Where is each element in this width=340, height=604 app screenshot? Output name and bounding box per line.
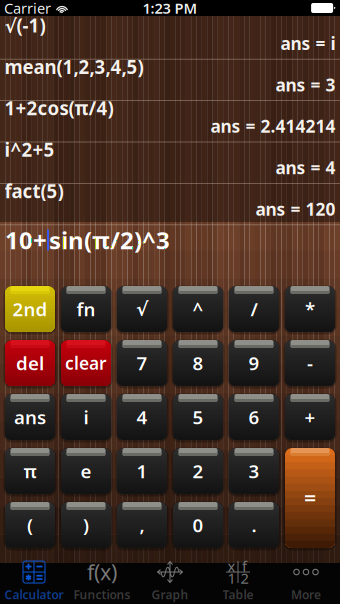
button[interactable]: 5 bbox=[173, 394, 223, 440]
button[interactable]: + bbox=[285, 394, 335, 440]
staticText: * bbox=[305, 297, 315, 321]
button[interactable]: i bbox=[61, 394, 111, 440]
staticText: 2nd bbox=[12, 297, 47, 321]
staticText: 1 bbox=[136, 459, 147, 483]
staticText: 8 bbox=[192, 351, 203, 375]
button[interactable]: e bbox=[61, 448, 111, 494]
button[interactable]: * bbox=[285, 286, 335, 332]
staticText: Calculator bbox=[4, 586, 63, 602]
staticText: 10+ bbox=[5, 224, 47, 256]
staticText: ) bbox=[83, 513, 89, 537]
staticText: Carrier bbox=[4, 0, 51, 18]
button[interactable]: 3 bbox=[229, 448, 279, 494]
staticText: i^2+5 bbox=[4, 137, 54, 162]
button[interactable]: f(x) bbox=[68, 563, 136, 604]
staticText: i bbox=[83, 405, 88, 429]
staticText: e bbox=[80, 459, 91, 483]
staticText: f(x) bbox=[87, 558, 117, 586]
staticText: ans = 120 bbox=[255, 197, 335, 220]
staticText: 1:23 PM bbox=[142, 0, 197, 18]
staticText: 1 bbox=[227, 568, 235, 588]
button[interactable]: 2 bbox=[173, 448, 223, 494]
button[interactable]: 9 bbox=[229, 340, 279, 386]
button[interactable]: = bbox=[285, 448, 335, 548]
staticText: √ bbox=[136, 298, 148, 320]
button[interactable]: x bbox=[204, 563, 272, 604]
staticText: 1+2cos(π/4) bbox=[4, 96, 113, 120]
staticText: = bbox=[304, 484, 316, 512]
staticText: mean(1,2,3,4,5) bbox=[4, 54, 143, 79]
button[interactable]: 6 bbox=[229, 394, 279, 440]
button[interactable]: Graph bbox=[136, 563, 204, 604]
staticText: fact(5) bbox=[4, 178, 63, 203]
button[interactable]: 10+ bbox=[0, 227, 340, 253]
staticText: - bbox=[307, 351, 313, 375]
button[interactable]: fn bbox=[61, 286, 111, 332]
button[interactable]: ( bbox=[5, 502, 55, 548]
staticText: 5 bbox=[192, 405, 203, 429]
staticText: + bbox=[304, 405, 315, 429]
staticText: x bbox=[227, 556, 235, 576]
staticText: 3 bbox=[248, 459, 259, 483]
button[interactable]: 8 bbox=[173, 340, 223, 386]
button[interactable]: clear bbox=[61, 340, 111, 386]
staticText: √(-1) bbox=[4, 13, 45, 38]
staticText: π bbox=[23, 459, 36, 483]
button[interactable]: ans bbox=[5, 394, 55, 440]
staticText: 0 bbox=[192, 513, 203, 537]
staticText: , bbox=[139, 513, 144, 537]
staticText: del bbox=[16, 351, 44, 375]
staticText: More bbox=[291, 586, 321, 602]
button[interactable]: del bbox=[5, 340, 55, 386]
staticText: ans = 2.414214 bbox=[210, 115, 335, 138]
staticText: Graph bbox=[151, 586, 188, 602]
button[interactable]: 4 bbox=[117, 394, 167, 440]
button[interactable]: 2nd bbox=[5, 286, 55, 332]
staticText: . bbox=[251, 513, 256, 537]
button[interactable]: √(-1) bbox=[0, 16, 340, 57]
button[interactable]: √ bbox=[117, 286, 167, 332]
staticText: ans = 4 bbox=[275, 156, 335, 179]
button[interactable]: 1 bbox=[117, 448, 167, 494]
button[interactable]: More bbox=[272, 563, 340, 604]
staticText: 2 bbox=[240, 568, 248, 588]
button[interactable]: 1+2cos(π/4) bbox=[0, 99, 340, 140]
button[interactable]: 0 bbox=[173, 502, 223, 548]
button[interactable]: fact(5) bbox=[0, 182, 340, 223]
staticText: 2 bbox=[192, 459, 203, 483]
button[interactable]: . bbox=[229, 502, 279, 548]
staticText: 7 bbox=[136, 351, 147, 375]
staticText: ans = 3 bbox=[275, 73, 335, 96]
button[interactable]: , bbox=[117, 502, 167, 548]
staticText: Functions bbox=[73, 586, 130, 602]
staticText: 4 bbox=[136, 405, 147, 429]
staticText: sin(π/2)^3 bbox=[49, 224, 170, 256]
staticText: / bbox=[250, 297, 257, 321]
button[interactable]: / bbox=[229, 286, 279, 332]
staticText: 9 bbox=[248, 351, 259, 375]
staticText: ^ bbox=[192, 297, 203, 321]
staticText: clear bbox=[65, 351, 107, 374]
staticText: 6 bbox=[248, 405, 259, 429]
staticText: ( bbox=[27, 513, 33, 537]
staticText: Table bbox=[222, 586, 253, 602]
staticText: fn bbox=[76, 297, 95, 321]
button[interactable]: i^2+5 bbox=[0, 140, 340, 182]
button[interactable]: Calculator bbox=[0, 563, 68, 604]
button[interactable]: mean(1,2,3,4,5) bbox=[0, 57, 340, 99]
staticText: ans bbox=[14, 405, 46, 429]
button[interactable]: - bbox=[285, 340, 335, 386]
button[interactable]: π bbox=[5, 448, 55, 494]
button[interactable]: 7 bbox=[117, 340, 167, 386]
button[interactable]: ^ bbox=[173, 286, 223, 332]
staticText: ans = i bbox=[280, 32, 335, 55]
staticText: f bbox=[242, 556, 247, 576]
button[interactable]: ) bbox=[61, 502, 111, 548]
